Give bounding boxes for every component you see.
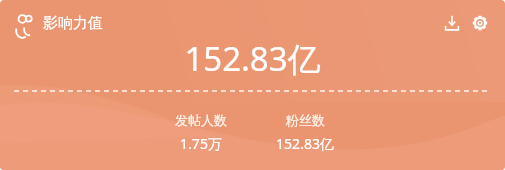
button[interactable]: Settings [467,10,493,36]
staticText: 影响力值 [43,14,103,33]
button[interactable]: 发帖人数 [157,112,245,153]
staticText: 粉丝数 [286,112,325,128]
button[interactable]: Download [439,10,465,36]
staticText: 152.83亿 [184,36,321,81]
staticText: 发帖人数 [175,112,227,128]
staticText: 1.75万 [180,134,222,153]
button[interactable]: 影响力值 [14,13,103,34]
staticText: 152.83亿 [276,134,334,153]
button[interactable]: 粉丝数 [261,112,349,153]
